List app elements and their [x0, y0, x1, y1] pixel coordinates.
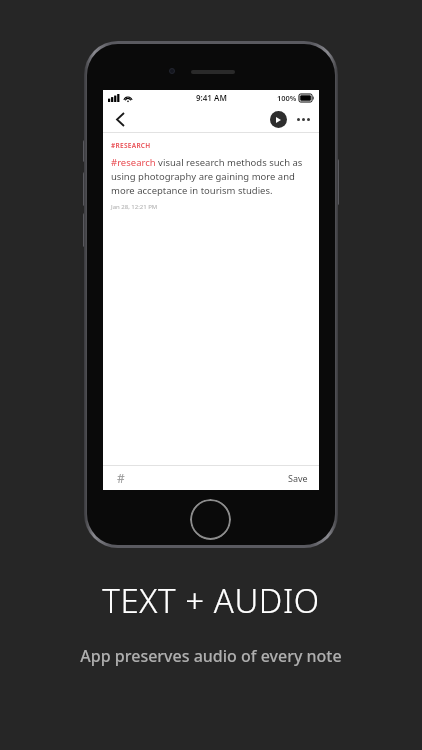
staticText: Save: [288, 472, 308, 484]
staticText: 100%: [277, 93, 297, 103]
staticText: 9:41 AM: [196, 92, 227, 103]
button[interactable]: Play audio: [270, 111, 287, 128]
button[interactable]: Back: [109, 108, 131, 130]
staticText: App preserves audio of every note: [0, 645, 422, 667]
button[interactable]: Save: [286, 469, 310, 487]
staticText: Jan 28, 12:21 PM: [111, 203, 158, 211]
button[interactable]: Home: [190, 499, 231, 540]
staticText: #research visual research methods such a…: [111, 156, 311, 197]
staticText: #RESEARCH: [111, 141, 151, 150]
staticText: #: [117, 470, 125, 486]
button[interactable]: More options: [293, 109, 313, 129]
staticText: TEXT + AUDIO: [0, 578, 422, 623]
button[interactable]: Add tag: [112, 469, 130, 487]
